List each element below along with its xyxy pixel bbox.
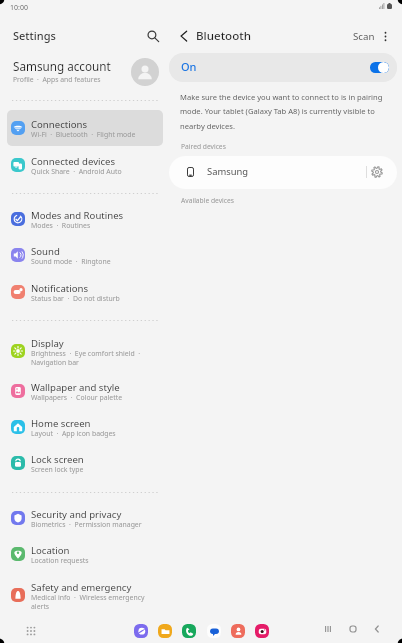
- staticText: On: [181, 59, 197, 74]
- staticText: Samsung: [207, 165, 249, 178]
- staticText: Samsung account: [13, 58, 111, 74]
- staticText: Notifications: [31, 282, 89, 295]
- button[interactable]: messages: [207, 624, 221, 638]
- staticText: Make sure the device you want to connect…: [180, 92, 384, 132]
- staticText: Layout · App icon badges: [31, 429, 157, 438]
- button[interactable]: Scan: [348, 27, 380, 46]
- button[interactable]: Sound: [7, 237, 163, 273]
- button[interactable]: Safety and emergency: [7, 573, 163, 617]
- button[interactable]: Connected devices: [7, 147, 163, 183]
- staticText: Modes and Routines: [31, 209, 124, 222]
- button[interactable]: Wallpaper and style: [7, 373, 163, 409]
- staticText: Location requests: [31, 556, 157, 565]
- staticText: Screen lock type: [31, 465, 157, 474]
- button[interactable]: Bluetooth: [196, 28, 251, 44]
- staticText: Scan: [353, 30, 375, 43]
- staticText: Security and privacy: [31, 508, 122, 521]
- button[interactable]: All apps: [22, 622, 40, 640]
- button[interactable]: More options: [376, 27, 394, 45]
- button[interactable]: internet: [134, 624, 148, 638]
- staticText: Sound: [31, 245, 60, 258]
- staticText: Safety and emergency: [31, 581, 132, 594]
- button[interactable]: contacts: [231, 624, 245, 638]
- button[interactable]: Lock screen: [7, 445, 163, 481]
- staticText: Location: [31, 544, 70, 557]
- button[interactable]: Back: [175, 27, 193, 45]
- button[interactable]: Recents: [320, 621, 336, 637]
- staticText: Quick Share · Android Auto: [31, 167, 157, 176]
- button[interactable]: Back: [369, 621, 385, 637]
- button[interactable]: camera: [255, 624, 269, 638]
- button[interactable]: Location: [7, 536, 163, 572]
- staticText: Profile · Apps and features: [13, 75, 101, 84]
- staticText: Connected devices: [31, 155, 116, 168]
- button[interactable]: Device settings: [369, 164, 385, 180]
- staticText: Wallpaper and style: [31, 381, 120, 394]
- button[interactable]: Samsung account: [6, 54, 162, 90]
- staticText: Wi-Fi · Bluetooth · Flight mode: [31, 130, 157, 139]
- staticText: Lock screen: [31, 453, 84, 466]
- button[interactable]: Home screen: [7, 409, 163, 445]
- button[interactable]: Display: [7, 329, 163, 373]
- button[interactable]: Security and privacy: [7, 500, 163, 536]
- button[interactable]: Notifications: [7, 274, 163, 310]
- staticText: 10:00: [10, 3, 28, 13]
- staticText: Available devices: [181, 196, 235, 205]
- button[interactable]: Home: [345, 621, 361, 637]
- staticText: Status bar · Do not disturb: [31, 294, 157, 303]
- staticText: Brightness · Eye comfort shield · Naviga…: [31, 349, 157, 367]
- staticText: Modes · Routines: [31, 221, 157, 230]
- button[interactable]: Search: [142, 25, 164, 47]
- staticText: Wallpapers · Colour palette: [31, 393, 157, 402]
- staticText: Biometrics · Permission manager: [31, 520, 157, 529]
- staticText: Connections: [31, 118, 88, 131]
- staticText: Display: [31, 337, 64, 350]
- staticText: Medical info · Wireless emergency alerts: [31, 593, 157, 611]
- button[interactable]: Settings: [13, 28, 56, 43]
- button[interactable]: Modes and Routines: [7, 201, 163, 237]
- button[interactable]: Connections: [7, 110, 163, 146]
- staticText: Sound mode · Ringtone: [31, 257, 157, 266]
- button[interactable]: Samsung: [169, 156, 397, 189]
- button[interactable]: On: [169, 53, 397, 82]
- button[interactable]: files: [158, 624, 172, 638]
- button[interactable]: phone: [182, 624, 196, 638]
- staticText: Home screen: [31, 417, 91, 430]
- staticText: Paired devices: [181, 142, 226, 151]
